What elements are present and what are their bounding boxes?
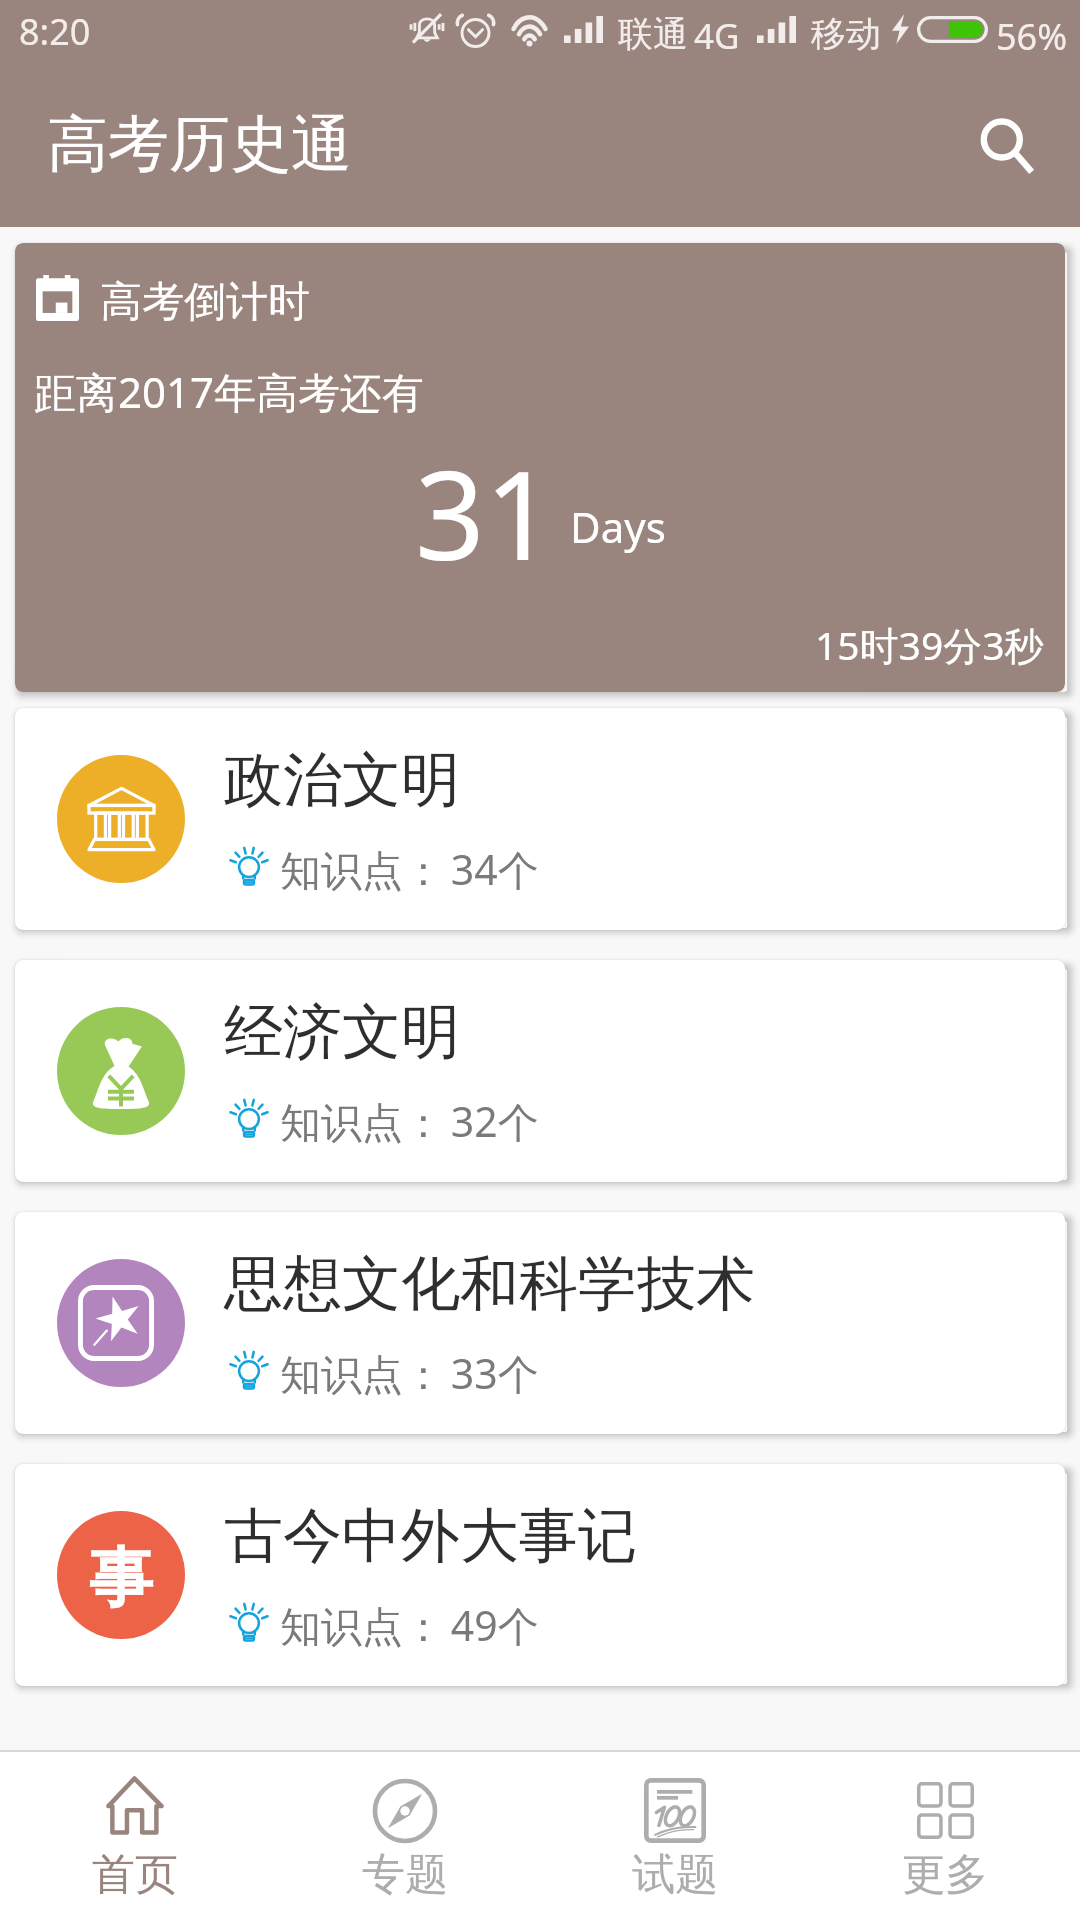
staticText: 更多 [902,1848,988,1902]
staticText: 知识点： 49个 [280,1597,539,1653]
staticText: 联通 [618,12,688,56]
staticText: 思想文化和科学技术 [224,1247,755,1321]
staticText: 知识点： 33个 [280,1345,539,1401]
staticText: 15时39分3秒 [815,618,1044,671]
button[interactable]: 首页 [0,1752,270,1920]
staticText: 8:20 [19,7,91,56]
staticText: 经济文明 [224,995,460,1069]
staticText: 事 [89,1538,153,1619]
button[interactable]: 事 [15,1464,1065,1686]
staticText: 政治文明 [224,743,460,817]
staticText: 专题 [362,1848,448,1902]
staticText: 知识点： 32个 [280,1093,539,1149]
button[interactable]: Search [955,96,1059,200]
staticText: 56% [996,12,1068,61]
staticText: 移动 [811,12,881,56]
staticText: 首页 [92,1848,178,1902]
staticText: 知识点： 34个 [280,841,539,897]
button[interactable]: 思想文化和科学技术 [15,1212,1065,1434]
button[interactable]: 高考倒计时 [15,243,1065,692]
button[interactable]: 经济文明 [15,960,1065,1182]
button[interactable]: 更多 [810,1752,1080,1920]
staticText: 高考倒计时 [100,276,310,329]
button[interactable]: 政治文明 [15,708,1065,930]
staticText: 试题 [632,1848,718,1902]
staticText: Days [570,498,666,555]
button[interactable]: 专题 [270,1752,540,1920]
staticText: 距离2017年高考还有 [34,363,425,420]
staticText: 31 [415,430,555,596]
staticText: 4G [694,12,740,60]
staticText: 高考历史通 [47,106,352,183]
button[interactable]: 试题 [540,1752,810,1920]
staticText: 古今中外大事记 [224,1499,637,1573]
